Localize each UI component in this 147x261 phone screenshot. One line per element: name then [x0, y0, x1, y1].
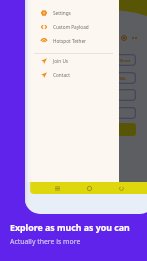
button[interactable]: Contact	[25, 68, 119, 81]
staticText: Hotspot Tether	[53, 38, 86, 44]
staticText: Contact	[53, 72, 70, 78]
staticText: SSH SSL	[111, 76, 126, 81]
button[interactable]: SSH SSL	[27, 72, 136, 84]
button[interactable]: Home	[83, 182, 95, 194]
button[interactable]: SSH Direct	[27, 54, 136, 66]
staticText: Join Us	[53, 58, 69, 64]
staticText: SSH Direct	[111, 58, 131, 63]
button[interactable]	[27, 89, 136, 101]
staticText: Actually there is more	[10, 237, 81, 246]
staticText: Settings	[53, 10, 71, 16]
button[interactable]: Custom Payload	[25, 20, 119, 33]
staticText: Explore as much as you can	[10, 222, 130, 234]
button[interactable]: Settings	[25, 6, 119, 19]
button[interactable]: Hotspot Tether	[25, 34, 119, 47]
button[interactable]	[27, 107, 136, 119]
button[interactable]: Join Us	[25, 54, 119, 67]
button[interactable]	[27, 123, 136, 136]
button[interactable]: History	[115, 182, 127, 194]
button[interactable]: Menu	[51, 182, 63, 194]
staticText: Custom Payload	[53, 24, 89, 30]
